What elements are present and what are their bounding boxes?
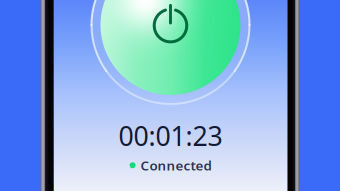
staticText: 00:01:23 bbox=[119, 118, 223, 153]
button[interactable]: Disconnect VPN bbox=[54, 0, 288, 191]
staticText: Connected bbox=[141, 156, 212, 174]
